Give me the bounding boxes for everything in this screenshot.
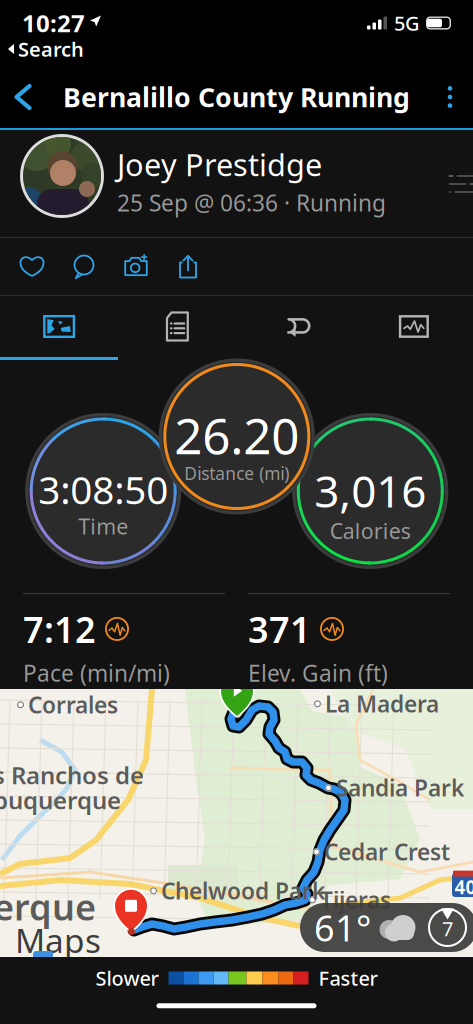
- staticText: Sandia Park: [336, 773, 464, 803]
- staticText: Faster: [318, 965, 377, 991]
- staticText: Tijeras: [320, 885, 391, 915]
- button[interactable]: Details: [118, 296, 236, 357]
- staticText: 7:12: [23, 605, 96, 653]
- staticText: 371: [248, 605, 311, 653]
- button[interactable]: Add photo: [110, 238, 162, 295]
- staticText: Search: [18, 36, 84, 62]
- staticText: Time: [78, 512, 128, 540]
- staticText: Elev. Gain (ft): [248, 658, 388, 688]
- staticText: s Ranchos de: [0, 759, 144, 791]
- button[interactable]: Laps: [236, 296, 355, 357]
- staticText: 7: [442, 915, 453, 942]
- button[interactable]: Share: [162, 238, 214, 295]
- staticText: Distance (mi): [184, 462, 289, 485]
- button[interactable]: Charts: [355, 296, 473, 357]
- staticText: 10:27: [22, 7, 85, 39]
- button[interactable]: Back: [0, 66, 46, 128]
- staticText: La Madera: [325, 689, 439, 719]
- staticText: Cedar Crest: [324, 837, 450, 867]
- staticText: erque: [0, 883, 96, 930]
- staticText: Corrales: [28, 690, 118, 720]
- staticText: 5G: [394, 10, 420, 36]
- staticText: Pace (min/mi): [23, 658, 170, 688]
- staticText: 26.20: [174, 402, 299, 468]
- staticText: Slower: [95, 965, 158, 991]
- staticText: Chelwood Park: [161, 876, 325, 906]
- staticText: 3,016: [314, 461, 426, 519]
- staticText: Joey Prestidge: [117, 144, 322, 185]
- button[interactable]: More options: [427, 66, 473, 128]
- staticText: buquerque: [0, 784, 121, 816]
- staticText: 25 Sep @ 06:36 · Running: [117, 188, 386, 218]
- staticText: 3:08:50: [38, 464, 168, 515]
- staticText: 61°: [314, 904, 371, 951]
- button[interactable]: Like: [6, 238, 58, 295]
- staticText: 40: [454, 875, 473, 899]
- staticText: Calories: [330, 516, 411, 545]
- staticText: Maps: [15, 918, 101, 962]
- staticText: Bernalillo County Running: [63, 79, 410, 115]
- button[interactable]: Map: [0, 296, 118, 357]
- button[interactable]: Comment: [58, 238, 110, 295]
